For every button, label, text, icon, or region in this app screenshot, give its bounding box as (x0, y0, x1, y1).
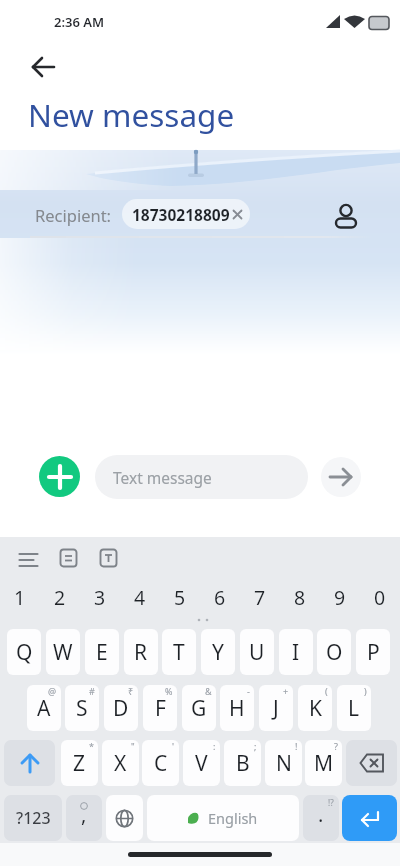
staticText: # (89, 685, 95, 697)
button[interactable]: & (182, 685, 216, 731)
staticText: F (155, 694, 166, 723)
button[interactable]: @ (27, 685, 61, 731)
button[interactable]: " (102, 740, 139, 786)
staticText: U (249, 638, 265, 667)
staticText: O (326, 638, 343, 667)
button[interactable]: Text message (95, 455, 308, 499)
button[interactable]: 8 (280, 581, 320, 613)
staticText: @ (48, 685, 57, 697)
button[interactable]: ?123 (4, 795, 62, 841)
button[interactable]: # (65, 685, 99, 731)
button[interactable]: Y (201, 629, 235, 675)
staticText: E (96, 638, 108, 667)
staticText: S (76, 694, 88, 723)
staticText: H (229, 694, 245, 723)
button[interactable]: ( (298, 685, 332, 731)
staticText: & (205, 685, 212, 697)
button[interactable]: Q (7, 629, 41, 675)
button[interactable] (332, 196, 360, 232)
button[interactable]: + (259, 685, 293, 731)
staticText: 18730218809 (132, 204, 230, 225)
button[interactable]: 0 (360, 581, 400, 613)
staticText: 6 (214, 584, 226, 611)
staticText: N (276, 749, 292, 778)
button[interactable]: W (46, 629, 80, 675)
button[interactable] (321, 457, 361, 497)
button[interactable]: 9 (320, 581, 360, 613)
button[interactable]: * (61, 740, 98, 786)
button[interactable]: R (124, 629, 158, 675)
button[interactable]: 18730218809 (122, 199, 250, 229)
button[interactable]: : (183, 740, 220, 786)
button[interactable]: 1 (0, 581, 40, 613)
staticText: English (208, 808, 258, 828)
staticText: , (81, 801, 87, 828)
staticText: B (236, 749, 250, 778)
staticText: : (213, 740, 216, 752)
staticText: ?123 (16, 807, 51, 829)
button[interactable]: % (143, 685, 177, 731)
staticText: 2 (54, 584, 66, 611)
button[interactable]: 3 (80, 581, 120, 613)
staticText: C (154, 749, 168, 778)
staticText: New message (28, 93, 235, 136)
staticText: " (131, 740, 135, 752)
button[interactable]: 2 (40, 581, 80, 613)
button[interactable] (26, 50, 62, 84)
staticText: ' (172, 740, 175, 752)
staticText: 3 (94, 584, 106, 611)
button[interactable] (4, 740, 55, 786)
button[interactable]: ? (305, 740, 342, 786)
button[interactable]: 4 (120, 581, 160, 613)
staticText: T (173, 638, 185, 667)
staticText: W (53, 638, 73, 667)
button[interactable] (99, 548, 119, 568)
button[interactable]: 7 (240, 581, 280, 613)
button[interactable]: P (356, 629, 390, 675)
button[interactable]: English (147, 795, 299, 841)
button[interactable]: 5 (160, 581, 200, 613)
staticText: X (114, 749, 127, 778)
staticText: 7 (254, 584, 266, 611)
button[interactable]: ) (337, 685, 371, 731)
button[interactable]: ; (224, 740, 261, 786)
button[interactable]: ' (142, 740, 179, 786)
staticText: L (348, 694, 360, 723)
button[interactable] (59, 548, 79, 568)
button[interactable] (342, 795, 397, 841)
button[interactable] (346, 740, 397, 786)
button[interactable] (39, 456, 80, 497)
button[interactable]: O (317, 629, 351, 675)
staticText: A (37, 694, 51, 723)
button[interactable]: , (66, 795, 102, 841)
staticText: % (165, 685, 173, 697)
staticText: ( (325, 685, 328, 697)
button[interactable]: E (85, 629, 119, 675)
staticText: K (309, 694, 322, 723)
button[interactable] (14, 547, 44, 573)
staticText: 2:36 AM (54, 13, 105, 31)
staticText: Y (212, 638, 224, 667)
button[interactable]: - (220, 685, 254, 731)
button[interactable]: T (162, 629, 196, 675)
staticText: 0 (374, 584, 386, 611)
button[interactable]: ₹ (104, 685, 138, 731)
button[interactable]: U (240, 629, 274, 675)
staticText: R (134, 638, 148, 667)
button[interactable]: ! (265, 740, 302, 786)
staticText: !? (328, 797, 334, 808)
staticText: ; (254, 740, 257, 752)
staticText: Z (73, 749, 86, 778)
button[interactable]: 6 (200, 581, 240, 613)
staticText: V (195, 749, 208, 778)
staticText: Q (16, 638, 33, 667)
staticText: 9 (334, 584, 346, 611)
staticText: ) (364, 685, 367, 697)
button[interactable]: I (279, 629, 313, 675)
button[interactable] (106, 795, 143, 841)
staticText: G (191, 694, 207, 723)
staticText: * (89, 740, 94, 752)
staticText: P (367, 638, 380, 667)
button[interactable]: . (303, 795, 339, 841)
staticText: 4 (134, 584, 146, 611)
